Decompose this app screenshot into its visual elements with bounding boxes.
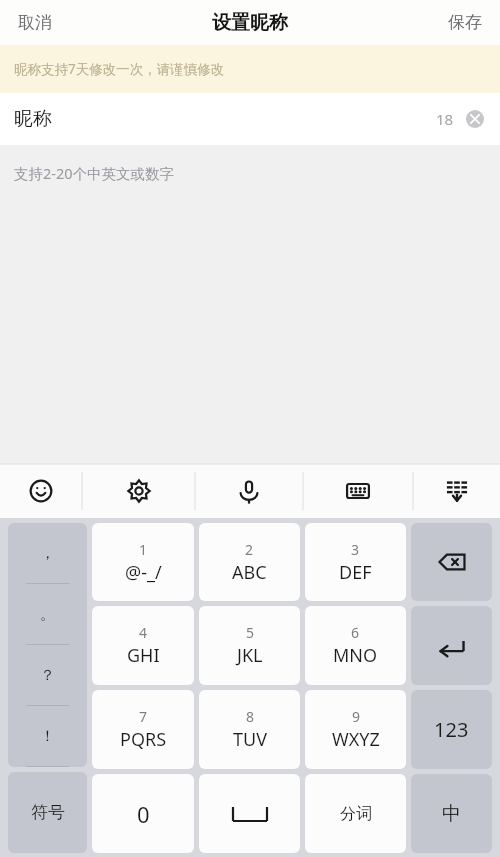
staticText: DEF: [339, 560, 372, 585]
button[interactable]: 分词: [305, 774, 406, 853]
staticText: 5: [246, 623, 255, 642]
button[interactable]: 保存: [444, 6, 486, 39]
button[interactable]: 9: [305, 690, 406, 769]
staticText: 6: [351, 623, 360, 642]
staticText: WXYZ: [332, 727, 380, 752]
staticText: 123: [434, 716, 469, 743]
staticText: ！: [40, 727, 55, 746]
button[interactable]: 取消: [14, 6, 56, 39]
button[interactable]: Clear text: [464, 108, 486, 130]
staticText: ，: [40, 544, 55, 563]
button[interactable]: Hide keyboard: [413, 464, 500, 518]
staticText: ？: [40, 666, 55, 685]
staticText: ABC: [232, 560, 267, 585]
staticText: 昵称: [14, 107, 52, 131]
button[interactable]: 3: [305, 523, 406, 601]
button[interactable]: 6: [305, 606, 406, 685]
button[interactable]: 7: [92, 690, 194, 769]
staticText: 4: [139, 623, 148, 642]
button[interactable]: Enter: [411, 606, 492, 685]
staticText: 1: [139, 540, 148, 559]
staticText: PQRS: [120, 727, 167, 752]
staticText: @-_/: [125, 560, 162, 585]
button[interactable]: 5: [199, 606, 300, 685]
button[interactable]: 123: [411, 690, 492, 769]
staticText: 8: [246, 707, 255, 726]
button[interactable]: 1: [92, 523, 194, 601]
button[interactable]: Keyboard layout: [303, 464, 413, 518]
button[interactable]: Backspace: [411, 523, 492, 601]
staticText: 7: [139, 707, 148, 726]
staticText: 设置昵称: [212, 11, 288, 35]
button[interactable]: Space: [199, 774, 300, 853]
staticText: 中: [442, 802, 461, 826]
button[interactable]: Punctuation: [8, 523, 87, 767]
staticText: 保存: [448, 12, 482, 33]
staticText: 。: [40, 605, 55, 624]
staticText: 18: [436, 109, 454, 129]
staticText: JKL: [237, 643, 263, 668]
staticText: 符号: [31, 802, 65, 823]
button[interactable]: 符号: [8, 772, 87, 853]
button[interactable]: 0: [92, 774, 194, 853]
button[interactable]: 2: [199, 523, 300, 601]
staticText: 取消: [18, 12, 52, 33]
staticText: 2: [245, 540, 254, 559]
button[interactable]: 4: [92, 606, 194, 685]
button[interactable]: Voice input: [195, 464, 303, 518]
staticText: TUV: [233, 727, 267, 752]
staticText: 9: [352, 707, 361, 726]
staticText: 支持2-20个中英文或数字: [14, 163, 175, 183]
staticText: 3: [351, 540, 360, 559]
button[interactable]: Settings: [82, 464, 195, 518]
button[interactable]: 中: [411, 774, 492, 853]
staticText: 昵称支持7天修改一次，请谨慎修改: [14, 60, 225, 78]
staticText: 分词: [340, 804, 372, 824]
staticText: GHI: [127, 643, 160, 668]
button[interactable]: Emoji: [0, 464, 82, 518]
button[interactable]: 8: [199, 690, 300, 769]
staticText: 0: [137, 799, 150, 829]
staticText: MNO: [333, 643, 378, 668]
